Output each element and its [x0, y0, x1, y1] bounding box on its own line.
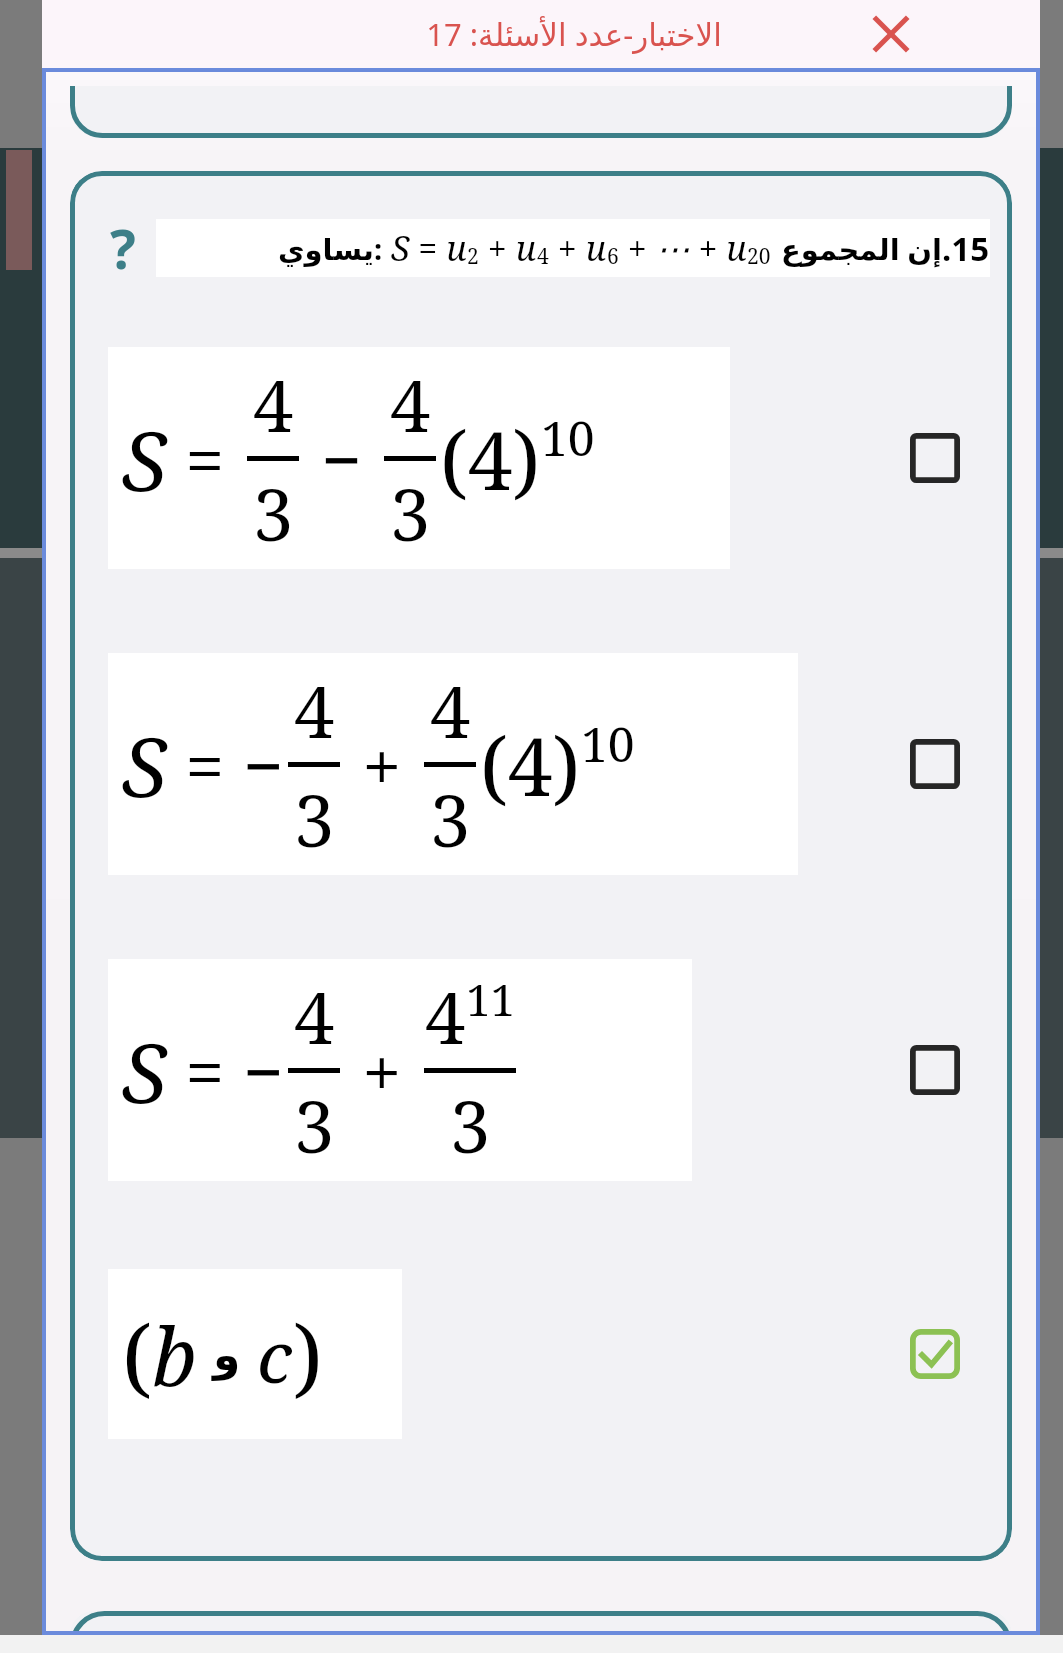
staticText: 20 [747, 242, 771, 271]
staticText: و [213, 1329, 241, 1380]
staticText: 4 [294, 661, 335, 759]
staticText: + u [549, 225, 607, 271]
staticText: ) [293, 1296, 323, 1413]
button[interactable]: Selected answer [910, 1329, 960, 1379]
staticText: (4) [440, 404, 541, 513]
staticText: 2 [467, 242, 479, 271]
staticText: + [344, 717, 420, 812]
staticText: 10 [541, 405, 595, 470]
staticText: + [344, 1023, 420, 1118]
button[interactable]: Select this answer [910, 739, 960, 789]
staticText: 4 [430, 661, 471, 759]
staticText: 3 [390, 464, 431, 562]
staticText: S [122, 709, 167, 821]
staticText: 3 [430, 770, 471, 868]
staticText: 3 [294, 1076, 335, 1174]
staticText: ? [110, 211, 136, 285]
staticText: = [167, 717, 243, 812]
button[interactable]: S [70, 347, 1012, 569]
staticText: − [243, 1023, 284, 1118]
staticText: 11 [466, 969, 516, 1029]
staticText: 3 [450, 1076, 491, 1174]
staticText: 4 [253, 355, 294, 453]
staticText: 3 [294, 770, 335, 868]
button[interactable]: Select this answer [910, 1045, 960, 1095]
button[interactable]: ( [70, 1269, 1012, 1439]
staticText: − [243, 717, 284, 812]
staticText: 10 [581, 711, 635, 776]
staticText: 4 [294, 967, 335, 1065]
button[interactable]: Select this answer [910, 433, 960, 483]
button[interactable] [70, 1611, 1012, 1635]
staticText: 4 [537, 242, 549, 271]
staticText: 6 [607, 242, 619, 271]
staticText: 3 [253, 464, 294, 562]
staticText: S [122, 403, 167, 515]
staticText: + ⋯ + u [619, 225, 747, 271]
staticText: S [122, 1015, 167, 1127]
button[interactable]: S [70, 959, 1012, 1181]
staticText: الاختبار-عدد الأسئلة: 17 [426, 13, 722, 55]
staticText: b [152, 1300, 197, 1409]
staticText: ( [122, 1296, 152, 1413]
staticText: 4 [390, 355, 431, 453]
staticText: 4 [425, 967, 466, 1065]
staticText: S = u [391, 225, 467, 271]
button[interactable]: Close [860, 3, 922, 65]
staticText: + u [479, 225, 537, 271]
staticText: .15 [942, 226, 990, 271]
staticText: يساوي: [278, 229, 383, 268]
staticText: c [257, 1306, 293, 1404]
staticText: إن المجموع [781, 229, 942, 268]
staticText: = [167, 1023, 243, 1118]
button[interactable]: S [70, 653, 1012, 875]
staticText: − [303, 411, 380, 506]
staticText: = [167, 411, 243, 506]
button[interactable] [70, 86, 1012, 138]
staticText: (4) [480, 710, 581, 819]
